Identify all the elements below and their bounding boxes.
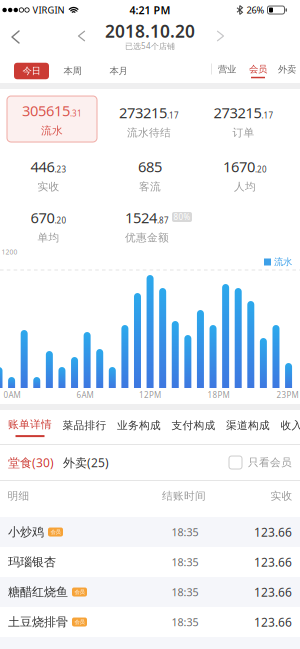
staticText: 已选54个店铺 [125,41,175,51]
staticText: 18:35 [171,555,198,569]
button[interactable]: 菜品排行 [62,419,106,432]
staticText: 2018.10.20 [105,19,195,42]
button[interactable]: 446 [30,157,66,193]
staticText: 18PM [207,390,229,400]
staticText: .17 [167,110,179,121]
staticText: 流水 [41,124,63,137]
staticText: 0AM [3,390,20,400]
staticText: 账单详情 [8,418,52,431]
button[interactable]: 会员 [244,63,272,78]
staticText: 流水待结 [127,126,171,139]
staticText: 670 [30,208,54,227]
staticText: 渠道构成 [226,419,270,432]
staticText: VIRGIN [32,4,64,16]
button[interactable]: 273215 [119,103,179,139]
button[interactable]: 今日 [14,63,49,79]
button[interactable]: 账单详情 [8,418,52,437]
staticText: 123.66 [254,584,292,600]
staticText: 1524 [125,208,157,227]
button[interactable]: 业务构成 [117,419,161,432]
button[interactable]: 305615 [7,96,97,142]
staticText: 今日 [22,65,40,77]
staticText: 人均 [234,180,256,193]
button[interactable]: 土豆烧排骨 [0,607,300,637]
staticText: 订单 [232,126,254,139]
staticText: 305615 [22,101,70,120]
staticText: 会员 [50,529,60,535]
button[interactable]: 支付构成 [171,419,215,432]
staticText: 实收 [37,180,59,193]
staticText: 685 [138,157,162,176]
button[interactable]: 玛瑙银杏 [0,547,300,577]
button[interactable] [72,25,90,47]
staticText: 23PM [276,390,298,400]
staticText: 6AM [76,390,93,400]
staticText: 26% [246,4,264,16]
button[interactable]: 1670 [223,157,267,193]
staticText: 123.66 [254,524,292,540]
staticText: .20 [54,215,66,226]
staticText: 明细 [7,489,29,502]
staticText: 玛瑙银杏 [8,555,56,569]
staticText: 优惠金额 [125,231,169,244]
staticText: 446 [30,157,54,176]
button[interactable]: 670 [30,208,66,244]
staticText: .23 [54,164,66,175]
staticText: .87 [157,215,169,226]
staticText: .17 [261,110,273,121]
staticText: 菜品排行 [62,419,106,432]
staticText: 80% [173,212,190,222]
staticText: 结账时间 [162,489,206,502]
staticText: 本周 [63,65,81,77]
staticText: 1200 [1,248,17,256]
staticText: 123.66 [254,554,292,570]
staticText: 273215 [213,103,261,122]
staticText: 流水 [274,256,292,268]
button[interactable]: 本月 [101,61,135,81]
button[interactable]: 外卖 [273,60,300,79]
button[interactable]: 堂食(30) [8,454,54,470]
staticText: .31 [70,108,82,119]
button[interactable]: 273215 [213,103,273,139]
button[interactable] [6,25,25,49]
button[interactable]: 收入构成 [280,419,300,432]
button[interactable]: 小炒鸡 [0,517,300,547]
staticText: 外卖 [278,64,296,75]
staticText: 客流 [139,180,161,193]
staticText: 收入构成 [280,419,300,432]
staticText: .20 [255,164,267,175]
staticText: 营业 [218,64,236,75]
button[interactable]: 本周 [55,61,89,81]
staticText: 18:35 [171,585,198,599]
staticText: 18:35 [171,615,198,629]
button[interactable]: 渠道构成 [226,419,270,432]
staticText: 本月 [109,65,127,77]
button[interactable]: 营业 [213,60,241,79]
staticText: 糖醋红烧鱼 [8,585,68,599]
staticText: 堂食(30) [8,454,54,470]
staticText: 会员 [74,619,84,625]
button[interactable]: 糖醋红烧鱼 [0,577,300,607]
staticText: 单均 [37,231,59,244]
button[interactable] [211,25,229,47]
staticText: 土豆烧排骨 [8,615,68,629]
staticText: 123.66 [254,614,292,630]
staticText: 业务构成 [117,419,161,432]
staticText: 会员 [74,589,84,595]
staticText: 实收 [270,489,292,502]
staticText: 273215 [119,103,167,122]
staticText: 支付构成 [171,419,215,432]
button[interactable]: 685 [138,157,162,193]
staticText: 4:21 PM [129,3,170,17]
staticText: 会员 [249,63,267,75]
staticText: 外卖(25) [63,454,109,470]
staticText: 只看会员 [248,456,292,469]
staticText: 12PM [139,390,161,400]
button[interactable]: 外卖(25) [63,454,109,470]
staticText: 18:35 [171,525,198,539]
staticText: 1670 [223,157,255,176]
button[interactable]: 只看会员 [229,456,292,469]
button[interactable]: 1524 [125,208,169,244]
staticText: 小炒鸡 [8,525,44,539]
